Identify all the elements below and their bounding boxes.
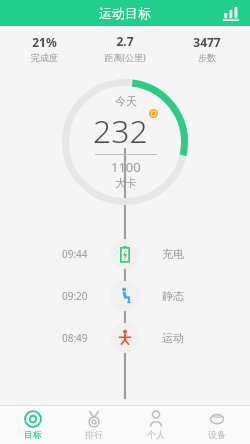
button[interactable]: 08:49 <box>0 322 250 354</box>
button[interactable]: 今天 <box>93 94 158 190</box>
staticText: 1100 <box>111 158 141 176</box>
button[interactable]: 统计 <box>220 2 242 24</box>
staticText: 个人 <box>147 429 165 440</box>
staticText: 设备 <box>208 429 226 440</box>
button[interactable]: 09:44 <box>0 238 250 270</box>
staticText: 目标 <box>24 429 42 440</box>
staticText: 步数 <box>198 52 216 63</box>
staticText: 充电 <box>162 247 184 261</box>
button[interactable]: 21% <box>6 34 82 63</box>
staticText: 08:49 <box>62 331 88 345</box>
staticText: 大卡 <box>115 176 137 190</box>
staticText: 运动目标 <box>99 5 151 21</box>
staticText: 完成度 <box>31 52 58 63</box>
staticText: 排行 <box>85 429 103 440</box>
staticText: 运动 <box>162 331 184 345</box>
button[interactable]: 3477 <box>169 34 245 63</box>
staticText: 3477 <box>193 34 221 50</box>
staticText: 21% <box>32 34 57 50</box>
staticText: 232 <box>93 109 148 153</box>
button[interactable]: 排行 <box>65 406 123 444</box>
button[interactable]: 09:20 <box>0 280 250 312</box>
staticText: 今天 <box>115 94 137 108</box>
button[interactable]: 目标 <box>4 406 62 444</box>
button[interactable]: 个人 <box>127 406 185 444</box>
staticText: 距离(公里) <box>104 51 146 63</box>
staticText: 09:44 <box>62 247 88 261</box>
staticText: 2.7 <box>116 33 134 49</box>
button[interactable]: 2.7 <box>87 33 163 63</box>
staticText: 静态 <box>162 289 184 303</box>
staticText: 09:20 <box>62 289 88 303</box>
button[interactable]: 设备 <box>188 406 246 444</box>
